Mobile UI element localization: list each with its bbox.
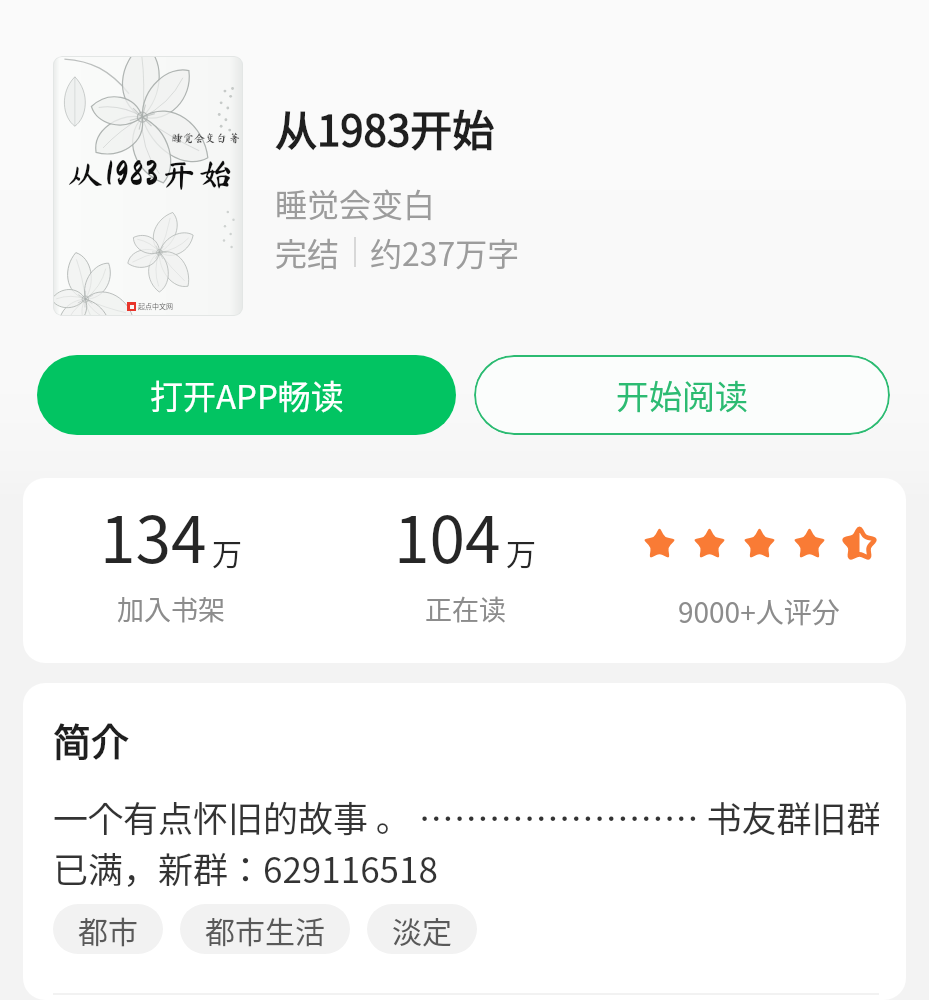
staticText: 睡觉会变白 [275, 180, 436, 226]
button[interactable]: Book cover 从1983开始 [53, 56, 243, 316]
staticText: 打开APP畅读 [150, 371, 344, 419]
button[interactable]: 104 [318, 478, 612, 663]
staticText: 9000+人评分 [678, 591, 840, 632]
button[interactable]: 打开APP畅读 [37, 355, 456, 435]
staticText: 从1983开始 [68, 156, 236, 191]
staticText: 完结 [275, 229, 340, 275]
staticText: 万 [212, 530, 242, 573]
staticText: 都市 [78, 908, 138, 951]
button[interactable]: 开始阅读 [474, 355, 890, 435]
other: Rating 4.5 out of 5 stars [642, 526, 877, 561]
staticText: 淡定 [392, 908, 452, 951]
staticText: 加入书架 [117, 589, 225, 628]
button[interactable]: Rating 4.5 out of 5 stars [612, 478, 906, 663]
button[interactable]: 淡定 [367, 904, 477, 954]
staticText: 简介 [53, 712, 130, 767]
staticText: 从1983开始 [275, 97, 495, 158]
button[interactable]: 都市生活 [180, 904, 350, 954]
staticText: 104 [394, 489, 501, 582]
staticText: 一个有点怀旧的故事 。 …………………… 书友群旧群 [53, 791, 879, 842]
button[interactable]: 都市 [53, 904, 163, 954]
staticText: 正在读 [425, 589, 506, 628]
staticText: 睡觉会变白 著 [172, 132, 241, 143]
staticText: 134 [100, 489, 207, 582]
staticText: 开始阅读 [616, 371, 748, 419]
staticText: 都市生活 [205, 908, 325, 951]
staticText: 约237万字 [370, 229, 520, 275]
staticText: 起点中文网 [138, 301, 173, 311]
staticText: 已满，新群：629116518 [53, 842, 438, 893]
button[interactable]: 134 [23, 478, 318, 663]
staticText: 万 [506, 530, 536, 573]
